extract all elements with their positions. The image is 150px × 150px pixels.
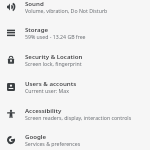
button[interactable]: Security & Location — [0, 46, 150, 73]
staticText: Screen readers, display, interaction con… — [25, 114, 132, 121]
staticText: Storage — [25, 25, 49, 33]
staticText: Google — [25, 132, 47, 140]
staticText: Screen lock, fingerprint — [25, 60, 82, 67]
button[interactable]: Accessibility — [0, 100, 150, 127]
staticText: 59% used - 13.24 GB free — [25, 33, 86, 40]
staticText: Sound — [25, 0, 44, 7]
button[interactable]: Google — [0, 126, 150, 150]
staticText: Volume, vibration, Do Not Disturb — [25, 7, 108, 14]
staticText: Users & accounts — [25, 79, 77, 87]
staticText: Security & Location — [25, 52, 83, 60]
staticText: Current user: Max — [25, 87, 69, 94]
staticText: Accessibility — [25, 106, 62, 114]
staticText: Services & preferences — [25, 140, 81, 147]
button[interactable]: Storage — [0, 19, 150, 46]
button[interactable]: Users & accounts — [0, 73, 150, 100]
button[interactable]: Sound — [0, 0, 150, 20]
